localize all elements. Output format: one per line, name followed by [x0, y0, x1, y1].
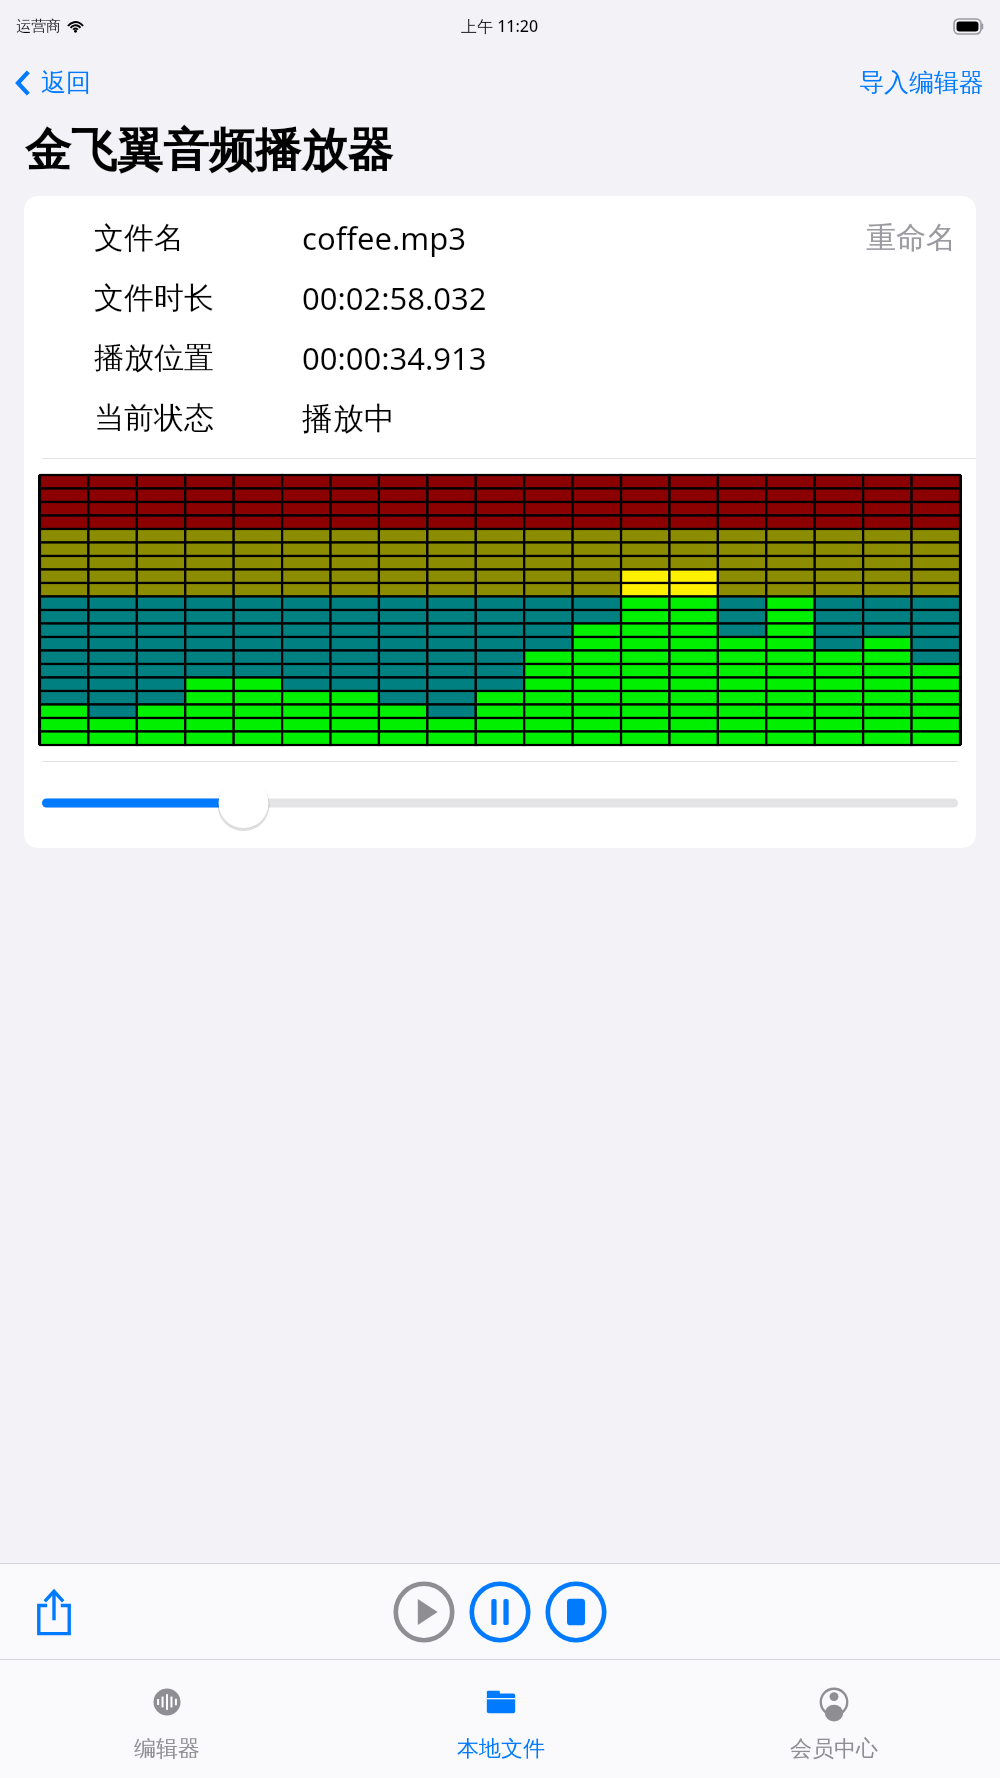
staticText: 文件名 — [94, 219, 184, 257]
staticText: 金飞翼音频播放器 — [25, 122, 393, 180]
button[interactable]: Stop — [545, 1581, 607, 1643]
button[interactable]: Share — [24, 1579, 84, 1645]
staticText: 当前状态 — [94, 399, 214, 437]
staticText: 本地文件 — [457, 1735, 545, 1763]
button[interactable]: 编辑器 — [0, 1660, 334, 1778]
staticText: coffee.mp3 — [302, 217, 467, 259]
button[interactable]: 本地文件 — [334, 1660, 667, 1778]
staticText: 导入编辑器 — [859, 67, 984, 98]
staticText: 运营商 — [16, 17, 61, 36]
button[interactable]: 导入编辑器 — [843, 61, 1000, 104]
button[interactable]: Playback position — [42, 786, 958, 820]
staticText: 会员中心 — [790, 1735, 878, 1763]
staticText: 编辑器 — [134, 1735, 200, 1763]
button[interactable]: 重命名 — [846, 211, 976, 265]
button[interactable]: 返回 — [0, 61, 103, 104]
staticText: 文件时长 — [94, 279, 214, 317]
staticText: 00:02:58.032 — [302, 277, 487, 319]
staticText: 重命名 — [866, 219, 956, 257]
button[interactable]: Play — [393, 1581, 455, 1643]
staticText: 播放中 — [302, 399, 395, 438]
staticText: 返回 — [41, 67, 91, 98]
button[interactable]: Pause — [469, 1581, 531, 1643]
staticText: 00:00:34.913 — [302, 337, 487, 379]
staticText: 上午 11:20 — [461, 15, 539, 37]
staticText: 播放位置 — [94, 339, 214, 377]
button[interactable]: 会员中心 — [667, 1660, 1000, 1778]
